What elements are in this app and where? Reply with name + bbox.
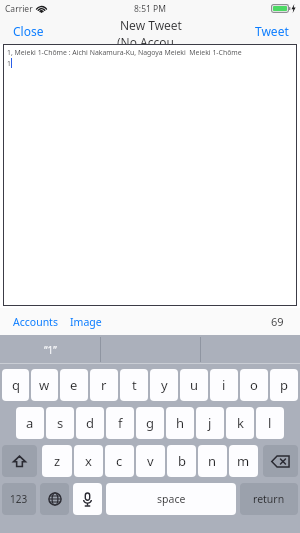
- staticText: e: [70, 376, 78, 394]
- button[interactable]: u: [180, 369, 208, 401]
- button[interactable]: d: [76, 407, 104, 439]
- button[interactable]: a: [16, 407, 44, 439]
- staticText: Carrier: [5, 3, 33, 15]
- staticText: f: [118, 414, 123, 432]
- staticText: return: [253, 492, 285, 506]
- button[interactable]: space: [106, 483, 236, 515]
- button[interactable]: n: [198, 445, 227, 477]
- staticText: o: [250, 376, 258, 394]
- button[interactable]: 1, Meieki 1-Chōme : Aichi Nakamura-Ku, N…: [3, 44, 297, 306]
- staticText: m: [237, 452, 250, 470]
- button[interactable]: Accounts: [0, 308, 64, 335]
- button[interactable]: Delete: [263, 445, 298, 477]
- button[interactable]: return: [240, 483, 298, 515]
- staticText: a: [26, 414, 34, 432]
- button[interactable]: x: [74, 445, 103, 477]
- button[interactable]: Close: [0, 17, 57, 44]
- button[interactable]: j: [196, 407, 224, 439]
- staticText: 1, Meieki 1-Chōme : Aichi Nakamura-Ku, N…: [7, 48, 242, 57]
- staticText: c: [116, 452, 123, 470]
- staticText: Close: [13, 23, 44, 39]
- staticText: i: [222, 376, 226, 394]
- button[interactable]: [101, 335, 200, 364]
- button[interactable]: p: [270, 369, 298, 401]
- button[interactable]: o: [240, 369, 268, 401]
- staticText: z: [54, 452, 61, 470]
- staticText: p: [280, 376, 288, 394]
- staticText: l: [268, 414, 272, 432]
- button[interactable]: s: [46, 407, 74, 439]
- staticText: t: [132, 376, 137, 394]
- button[interactable]: t: [120, 369, 148, 401]
- staticText: w: [39, 376, 50, 394]
- button[interactable]: Tweet: [244, 17, 300, 44]
- staticText: v: [147, 452, 154, 470]
- staticText: 1: [7, 59, 11, 68]
- button[interactable]: Dictation: [73, 483, 102, 515]
- staticText: New Tweet: [120, 17, 182, 33]
- button[interactable]: f: [106, 407, 134, 439]
- staticText: q: [12, 376, 20, 394]
- button[interactable]: g: [136, 407, 164, 439]
- staticText: Image: [70, 315, 102, 329]
- staticText: r: [101, 376, 107, 394]
- button[interactable]: c: [105, 445, 134, 477]
- button[interactable]: z: [42, 445, 72, 477]
- button[interactable]: Shift: [2, 445, 37, 477]
- button[interactable]: l: [256, 407, 284, 439]
- staticText: (No Accou…: [117, 34, 184, 44]
- staticText: 123: [10, 492, 28, 506]
- button[interactable]: 123: [2, 483, 36, 515]
- button[interactable]: r: [90, 369, 118, 401]
- staticText: j: [208, 414, 212, 432]
- button[interactable]: e: [60, 369, 88, 401]
- button[interactable]: m: [229, 445, 258, 477]
- staticText: u: [190, 376, 199, 394]
- button[interactable]: h: [166, 407, 194, 439]
- staticText: n: [208, 452, 217, 470]
- button[interactable]: Next keyboard: [40, 483, 69, 515]
- button[interactable]: q: [2, 369, 29, 401]
- staticText: Accounts: [13, 315, 58, 329]
- staticText: space: [157, 492, 186, 506]
- button[interactable]: v: [136, 445, 165, 477]
- staticText: Tweet: [255, 23, 289, 39]
- staticText: x: [85, 452, 92, 470]
- button[interactable]: b: [167, 445, 196, 477]
- button[interactable]: w: [31, 369, 58, 401]
- staticText: s: [57, 414, 64, 432]
- button[interactable]: k: [226, 407, 254, 439]
- button[interactable]: [201, 335, 300, 364]
- staticText: y: [161, 376, 168, 394]
- button[interactable]: Image: [64, 308, 108, 335]
- staticText: g: [146, 414, 154, 432]
- staticText: h: [176, 414, 185, 432]
- staticText: 8:51 PM: [134, 3, 166, 15]
- staticText: b: [178, 452, 186, 470]
- staticText: d: [86, 414, 94, 432]
- staticText: “1”: [44, 343, 57, 357]
- button[interactable]: “1”: [0, 335, 100, 364]
- button[interactable]: y: [150, 369, 178, 401]
- staticText: k: [237, 414, 244, 432]
- staticText: 69: [271, 314, 284, 329]
- button[interactable]: i: [210, 369, 238, 401]
